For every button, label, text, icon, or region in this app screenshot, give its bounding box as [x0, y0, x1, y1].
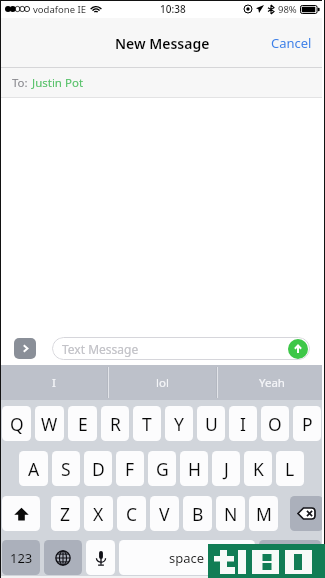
staticText: Cancel — [271, 34, 312, 52]
button[interactable]: Yeah — [218, 365, 325, 400]
staticText: C — [126, 502, 138, 526]
button[interactable]: H — [180, 451, 208, 486]
button[interactable]: U — [197, 406, 225, 441]
button[interactable]: E — [68, 406, 97, 441]
other: Dictate — [95, 550, 107, 566]
button[interactable]: 123 — [2, 540, 40, 575]
staticText: M — [256, 502, 272, 526]
button[interactable]: Send — [288, 339, 308, 359]
staticText: T — [142, 412, 152, 436]
staticText: U — [205, 412, 218, 436]
button[interactable]: A — [19, 451, 48, 486]
button[interactable]: R — [101, 406, 129, 441]
staticText: G — [156, 457, 169, 481]
button[interactable]: O — [261, 406, 289, 441]
other: Shift — [14, 507, 29, 521]
button[interactable]: space — [119, 540, 255, 575]
staticText: Justin Pot — [32, 75, 84, 91]
button[interactable]: lol — [109, 365, 216, 400]
staticText: W — [41, 412, 58, 436]
staticText: Text Message — [62, 341, 139, 357]
staticText: V — [159, 502, 170, 526]
button[interactable]: K — [244, 451, 272, 486]
button[interactable]: T — [133, 406, 161, 441]
button[interactable]: F — [116, 451, 144, 486]
button[interactable]: J — [212, 451, 240, 486]
button[interactable]: X — [84, 496, 113, 531]
staticText: Yeah — [259, 375, 285, 391]
staticText: P — [302, 412, 313, 436]
staticText: F — [125, 457, 135, 481]
staticText: R — [110, 412, 121, 436]
button[interactable]: Dictate — [86, 540, 115, 575]
button[interactable]: C — [117, 496, 146, 531]
button[interactable]: V — [150, 496, 179, 531]
button[interactable]: Y — [165, 406, 193, 441]
button[interactable]: Text Message — [52, 337, 310, 360]
staticText: Y — [174, 412, 184, 436]
button[interactable]: S — [52, 451, 80, 486]
button[interactable]: Cancel — [261, 24, 325, 62]
button[interactable]: N — [216, 496, 245, 531]
staticText: B — [192, 502, 204, 526]
staticText: 10:38 — [160, 2, 186, 16]
staticText: O — [268, 412, 282, 436]
staticText: S — [61, 457, 71, 481]
staticText: I — [52, 375, 56, 391]
staticText: lol — [156, 375, 169, 391]
button[interactable]: D — [84, 451, 112, 486]
button[interactable]: G — [148, 451, 176, 486]
staticText: L — [285, 457, 295, 481]
button[interactable]: L — [276, 451, 304, 486]
button[interactable]: Change keyboard — [44, 540, 82, 575]
staticText: 123 — [10, 549, 33, 567]
button[interactable]: I — [229, 406, 257, 441]
button[interactable]: Z — [51, 496, 80, 531]
button[interactable]: Q — [2, 406, 31, 441]
button[interactable]: P — [293, 406, 321, 441]
button[interactable]: Shift — [2, 496, 40, 531]
button[interactable]: M — [249, 496, 278, 531]
button[interactable]: B — [183, 496, 212, 531]
staticText: D — [92, 457, 105, 481]
staticText: space — [169, 549, 205, 567]
staticText: Z — [60, 502, 71, 526]
staticText: return — [271, 549, 310, 567]
staticText: X — [93, 502, 104, 526]
staticText: To: — [12, 75, 28, 91]
staticText: K — [253, 457, 264, 481]
button[interactable]: return — [259, 540, 321, 575]
other: Change keyboard — [55, 550, 71, 566]
button[interactable]: W — [35, 406, 64, 441]
button[interactable]: Show apps — [14, 338, 36, 359]
staticText: N — [224, 502, 238, 526]
staticText: J — [224, 457, 229, 481]
other: Backspace — [297, 507, 316, 520]
staticText: vodafone IE — [33, 3, 86, 16]
staticText: H — [188, 457, 201, 481]
button[interactable]: Backspace — [290, 496, 323, 531]
staticText: I — [240, 412, 246, 436]
staticText: New Message — [115, 34, 210, 53]
staticText: Q — [10, 412, 24, 436]
staticText: 98% — [278, 3, 297, 16]
staticText: A — [28, 457, 40, 481]
staticText: E — [78, 412, 88, 436]
button[interactable]: I — [0, 365, 107, 400]
